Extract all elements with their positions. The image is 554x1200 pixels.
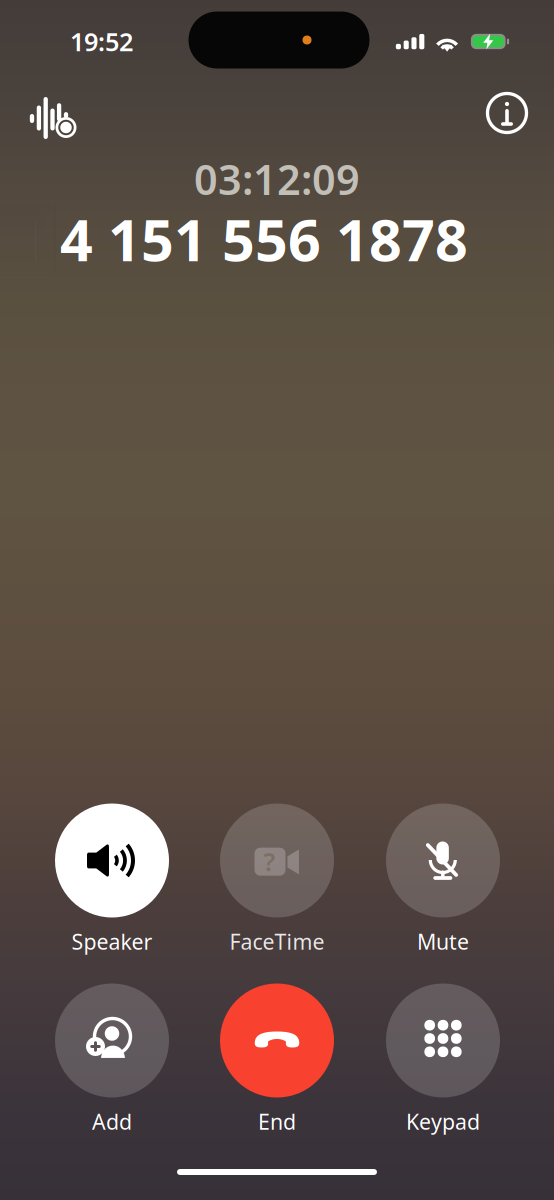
button[interactable]: ? bbox=[202, 803, 352, 952]
staticText: FaceTime bbox=[229, 927, 324, 956]
staticText: Add bbox=[92, 1107, 132, 1136]
button[interactable]: Speaker bbox=[37, 803, 187, 952]
staticText: ? bbox=[263, 844, 275, 878]
staticText: Speaker bbox=[71, 927, 152, 956]
button[interactable]: End bbox=[202, 983, 352, 1132]
button[interactable]: Call details bbox=[476, 82, 538, 144]
button[interactable]: Record call bbox=[19, 85, 83, 149]
staticText: Mute bbox=[417, 927, 469, 956]
button[interactable]: Add bbox=[37, 983, 187, 1132]
button[interactable]: Keypad bbox=[368, 983, 518, 1132]
staticText: 19:52 bbox=[70, 25, 133, 58]
staticText: Keypad bbox=[406, 1107, 480, 1136]
staticText: +1 4 151 556 1878 bbox=[0, 201, 468, 277]
staticText: 03:12:09 bbox=[194, 152, 360, 206]
button[interactable]: Mute bbox=[368, 803, 518, 952]
staticText: End bbox=[258, 1107, 296, 1136]
